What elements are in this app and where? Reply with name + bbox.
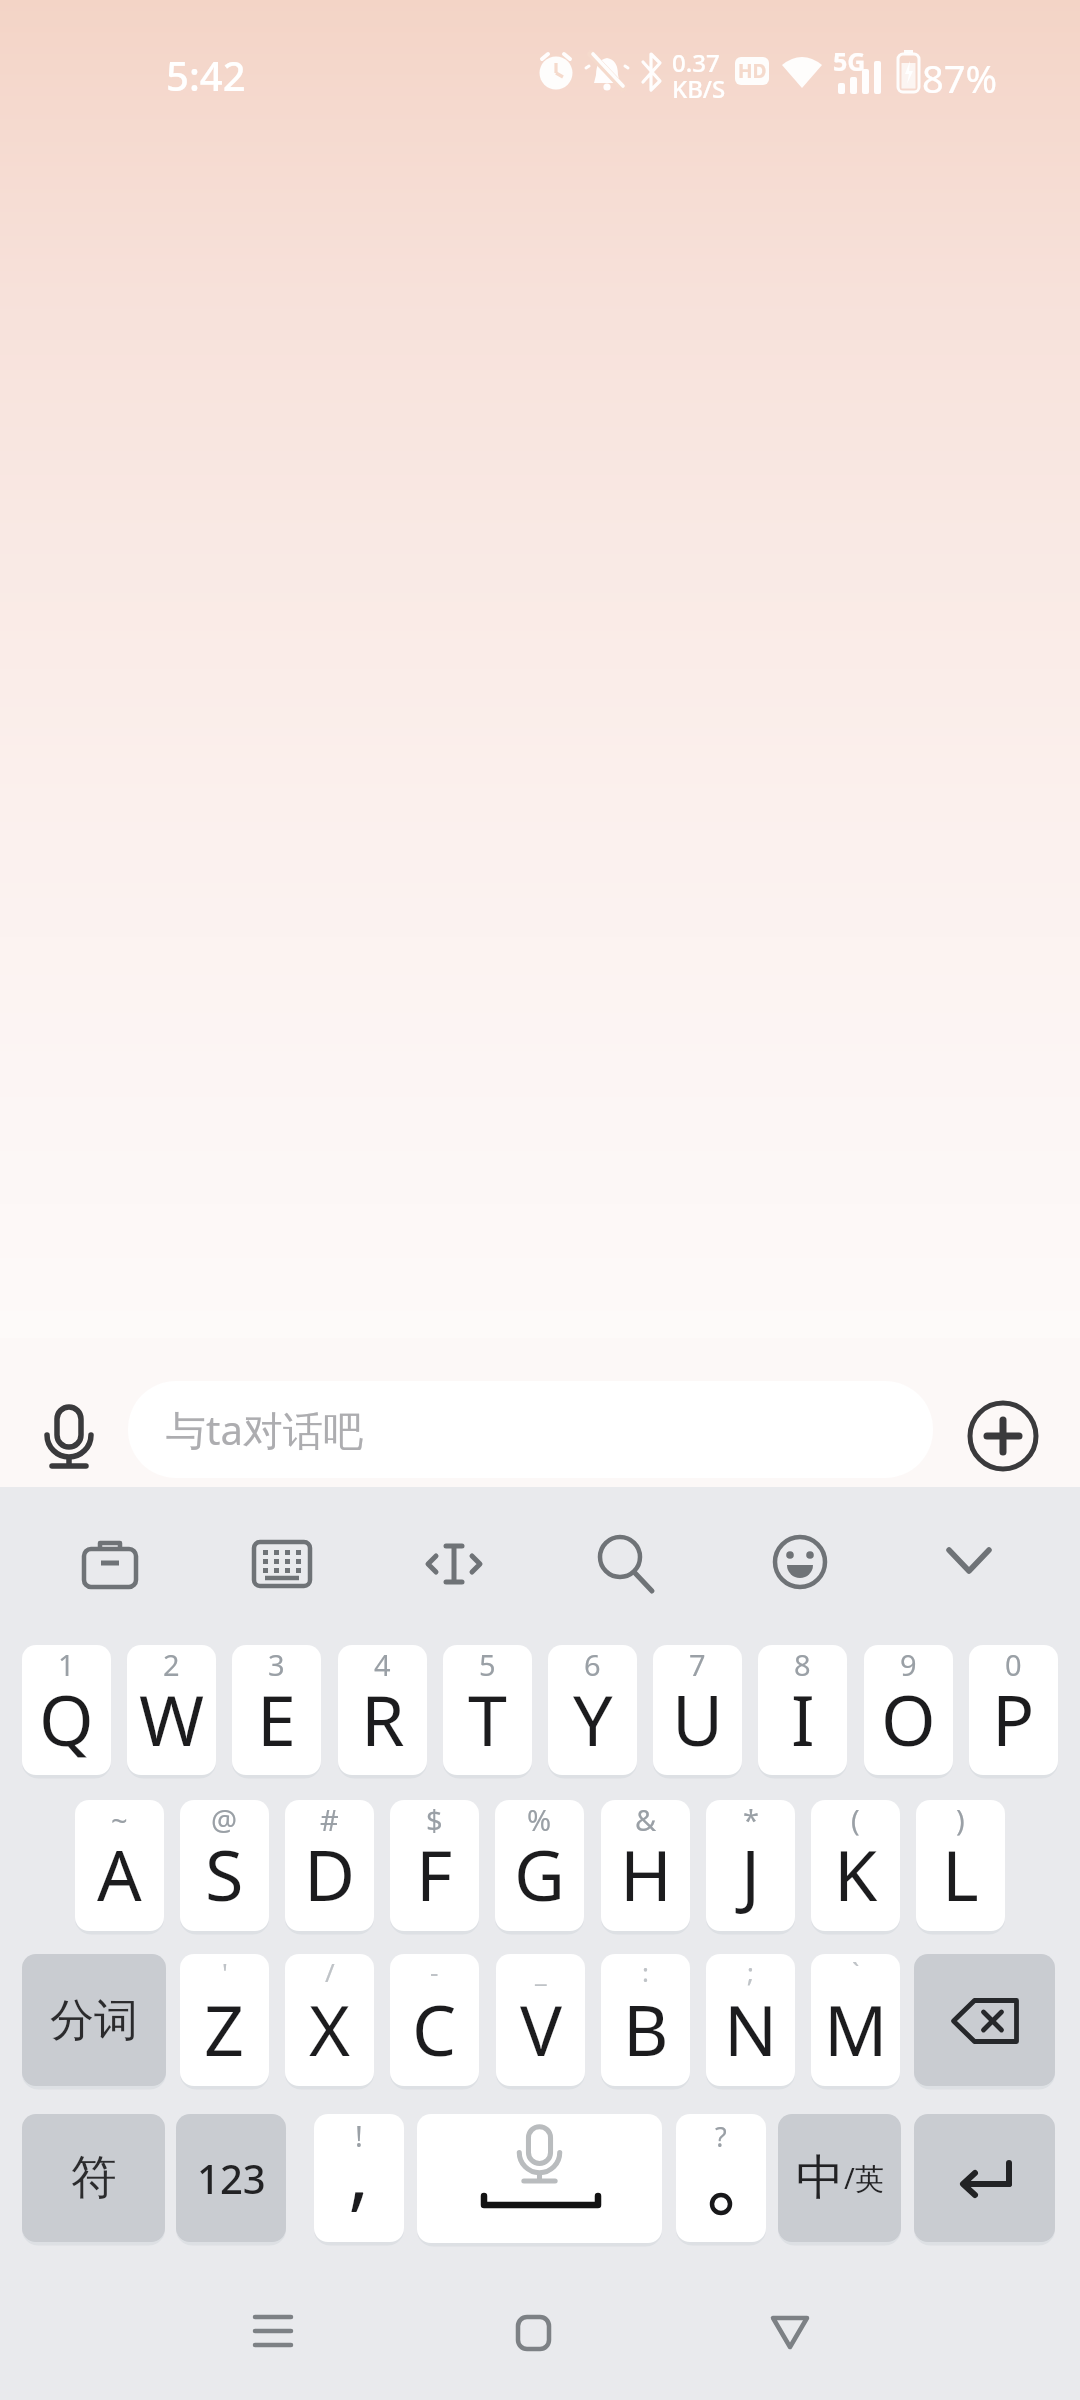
staticText: Z — [204, 1981, 245, 2076]
staticText: 符 — [71, 2149, 117, 2207]
button[interactable]: 0 — [969, 1645, 1058, 1775]
button[interactable]: / — [285, 1954, 374, 2086]
staticText: B — [623, 1981, 669, 2076]
staticText: ' — [222, 1954, 228, 1989]
staticText: ; — [747, 1954, 754, 1989]
button[interactable] — [594, 1530, 658, 1594]
button[interactable]: 4 — [338, 1645, 427, 1775]
button[interactable] — [914, 2114, 1055, 2242]
staticText: & — [635, 1800, 657, 1839]
button[interactable] — [80, 1534, 140, 1594]
staticText: N — [724, 1981, 778, 2076]
staticText: C — [412, 1981, 457, 2076]
button[interactable] — [252, 1534, 312, 1594]
staticText: 1 — [58, 1645, 75, 1684]
staticText: U — [672, 1671, 724, 1766]
staticText: W — [139, 1671, 205, 1766]
staticText: ? — [715, 2118, 727, 2155]
staticText: 123 — [197, 2151, 266, 2205]
staticText: P — [992, 1671, 1035, 1766]
button[interactable] — [40, 1398, 100, 1472]
button[interactable]: 2 — [127, 1645, 216, 1775]
button[interactable]: _ — [496, 1954, 585, 2086]
button[interactable]: 中 — [778, 2114, 901, 2242]
button[interactable] — [417, 2114, 662, 2243]
button[interactable]: 符 — [22, 2114, 165, 2242]
button[interactable] — [914, 1954, 1055, 2086]
button[interactable]: @ — [180, 1800, 269, 1931]
staticText: 0.37 — [672, 46, 720, 79]
button[interactable] — [516, 2315, 552, 2351]
staticText: 中 — [796, 2148, 844, 2208]
staticText: D — [304, 1826, 356, 1921]
button[interactable] — [770, 2315, 810, 2351]
staticText: O — [881, 1671, 936, 1766]
staticText: E — [257, 1671, 296, 1766]
button[interactable] — [969, 1402, 1037, 1470]
staticText: 2 — [163, 1645, 180, 1684]
button[interactable]: - — [390, 1954, 479, 2086]
staticText: Y — [573, 1671, 613, 1766]
staticText: HD — [738, 58, 767, 84]
staticText: _ — [535, 1954, 547, 1989]
staticText: X — [309, 1981, 351, 2076]
button[interactable]: ; — [706, 1954, 795, 2086]
staticText: ! — [355, 2116, 363, 2155]
button[interactable] — [424, 1534, 484, 1594]
staticText: R — [361, 1671, 405, 1766]
button[interactable]: $ — [390, 1800, 479, 1931]
staticText: @ — [211, 1800, 238, 1839]
staticText: 5:42 — [166, 48, 246, 102]
button[interactable]: ' — [180, 1954, 269, 2086]
staticText: A — [97, 1826, 142, 1921]
button[interactable]: % — [495, 1800, 584, 1931]
button[interactable] — [772, 1534, 828, 1590]
button[interactable]: * — [706, 1800, 795, 1931]
button[interactable]: 9 — [864, 1645, 953, 1775]
button[interactable]: 1 — [22, 1645, 111, 1775]
staticText: J — [741, 1826, 761, 1921]
button[interactable]: ` — [811, 1954, 900, 2086]
staticText: * — [743, 1800, 759, 1839]
staticText: / — [325, 1954, 335, 1989]
button[interactable]: 7 — [653, 1645, 742, 1775]
staticText: G — [514, 1826, 565, 1921]
staticText: 与ta对话吧 — [166, 1402, 363, 1457]
staticText: ( — [851, 1800, 860, 1839]
button[interactable]: ! — [314, 2114, 404, 2242]
staticText: L — [942, 1826, 979, 1921]
button[interactable]: ( — [811, 1800, 900, 1931]
staticText: 6 — [584, 1645, 601, 1684]
staticText: 7 — [689, 1645, 706, 1684]
staticText: 5G — [833, 44, 866, 78]
button[interactable]: ~ — [75, 1800, 164, 1931]
staticText: F — [416, 1826, 453, 1921]
staticText: M — [824, 1981, 888, 2076]
staticText: S — [205, 1826, 244, 1921]
staticText: ` — [852, 1954, 860, 1989]
staticText: 分词 — [50, 1993, 138, 2048]
staticText: - — [430, 1954, 439, 1989]
staticText: K — [834, 1826, 878, 1921]
button[interactable]: 分词 — [22, 1954, 166, 2086]
button[interactable]: 8 — [758, 1645, 847, 1775]
button[interactable]: : — [601, 1954, 690, 2086]
button[interactable]: 5 — [443, 1645, 532, 1775]
staticText: Q — [39, 1671, 94, 1766]
button[interactable]: 6 — [548, 1645, 637, 1775]
staticText: 9 — [900, 1645, 917, 1684]
button[interactable]: 123 — [176, 2114, 286, 2242]
button[interactable]: 与ta对话吧 — [128, 1381, 933, 1478]
button[interactable] — [253, 2313, 293, 2353]
staticText: ) — [956, 1800, 965, 1839]
button[interactable]: # — [285, 1800, 374, 1931]
staticText: I — [791, 1671, 815, 1766]
button[interactable]: ) — [916, 1800, 1005, 1931]
staticText: 3 — [268, 1645, 285, 1684]
button[interactable]: ? — [676, 2114, 766, 2242]
staticText: 0 — [1005, 1645, 1022, 1684]
button[interactable]: & — [601, 1800, 690, 1931]
staticText: , — [348, 2116, 370, 2225]
button[interactable]: 3 — [232, 1645, 321, 1775]
button[interactable] — [944, 1540, 994, 1580]
